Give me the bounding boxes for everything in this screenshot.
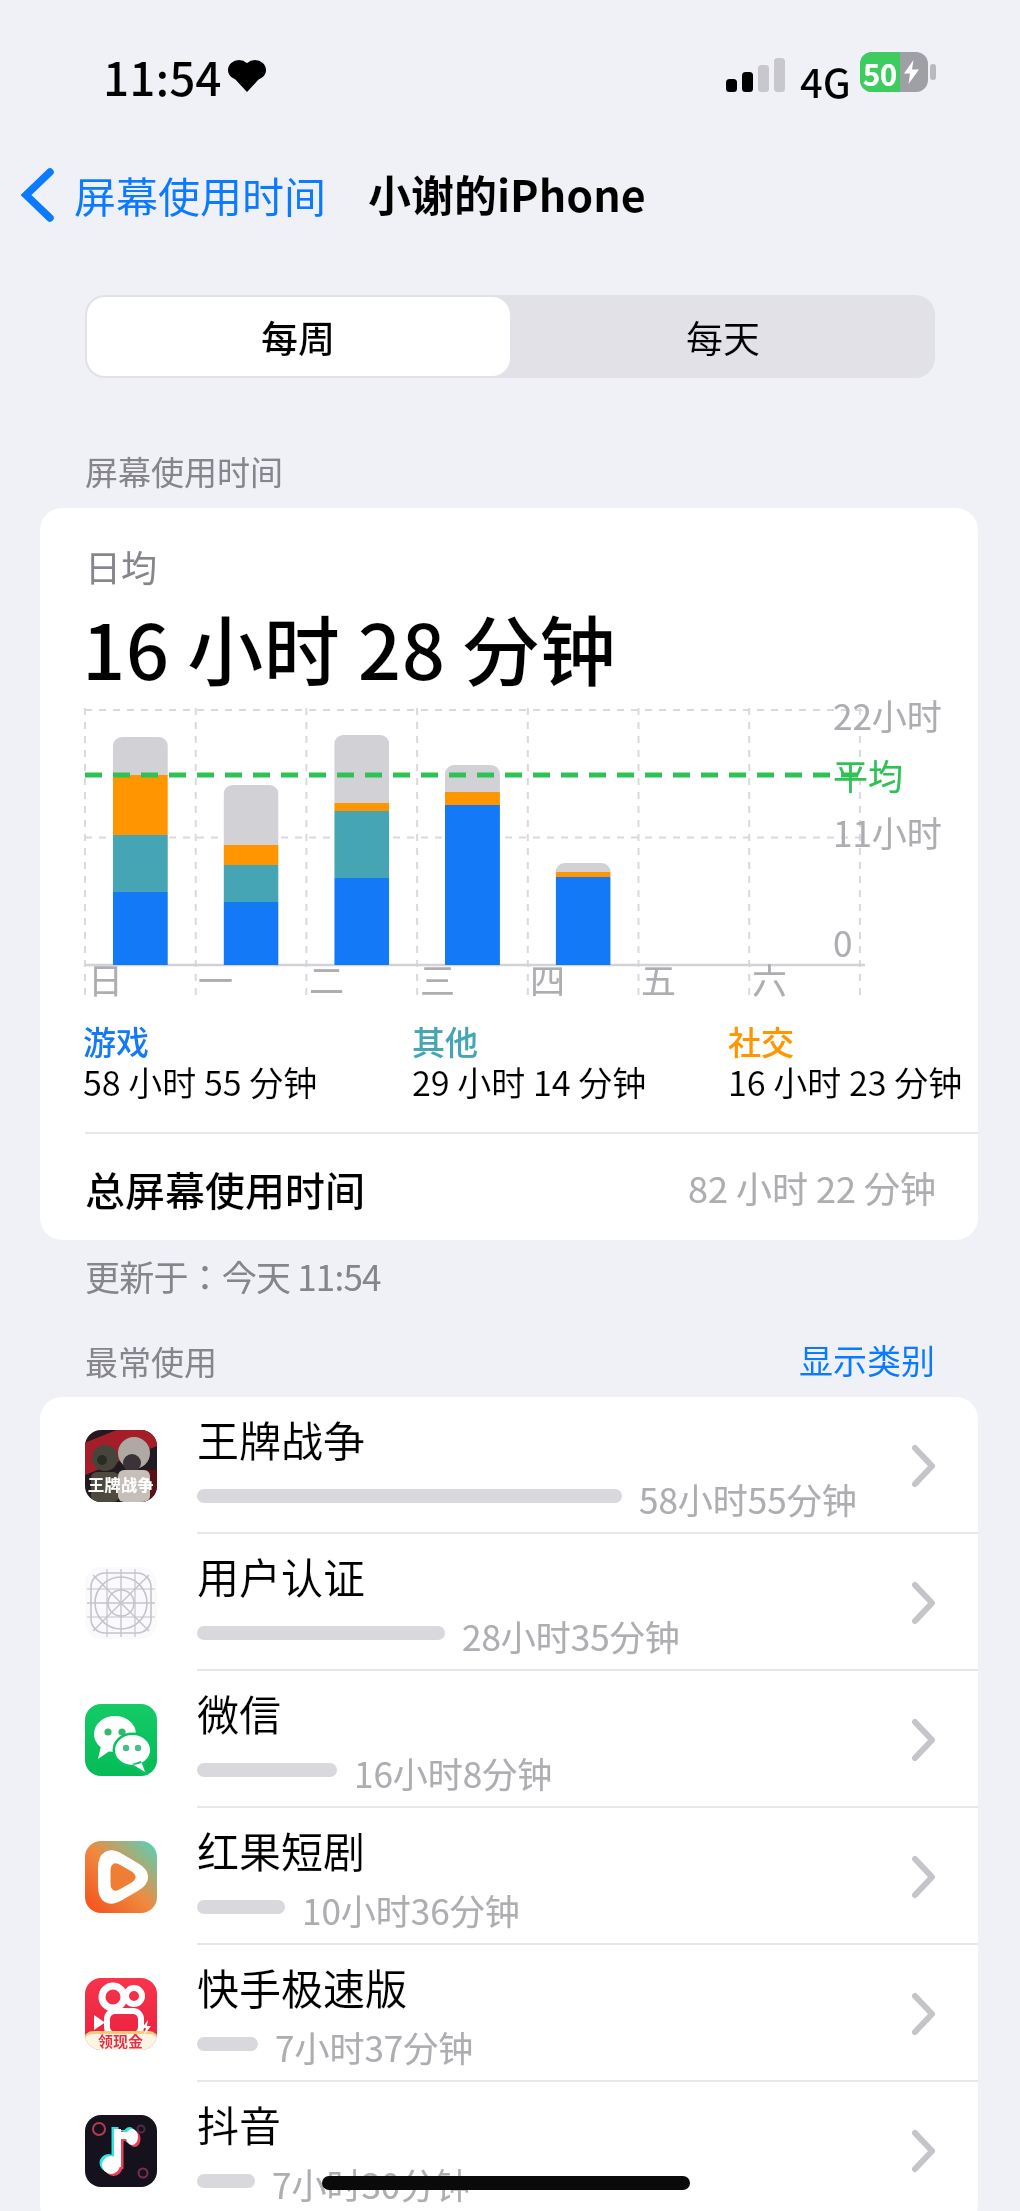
staticText: 7小时30分钟: [272, 2158, 471, 2209]
staticText: 屏幕使用时间: [85, 447, 283, 495]
staticText: 五: [641, 953, 677, 1004]
staticText: 王牌战争: [88, 1472, 155, 1495]
staticText: 50: [863, 52, 898, 92]
button[interactable]: 显示类别: [635, 1334, 935, 1384]
staticText: 领现金: [98, 2030, 144, 2052]
staticText: 三: [420, 953, 456, 1004]
staticText: 每周: [261, 310, 335, 364]
button[interactable]: [40, 1534, 978, 1671]
staticText: 更新于：今天 11:54: [85, 1250, 381, 1301]
button[interactable]: 每周: [85, 295, 510, 378]
staticText: 日: [88, 953, 124, 1004]
staticText: 10小时36分钟: [302, 1884, 520, 1935]
staticText: 二: [309, 953, 345, 1004]
staticText: 六: [752, 953, 788, 1004]
staticText: 王牌战争: [197, 1408, 366, 1469]
staticText: 82 小时 22 分钟: [688, 1161, 937, 1213]
button[interactable]: [40, 2082, 978, 2211]
button[interactable]: [40, 1397, 978, 1534]
staticText: 7小时37分钟: [275, 2021, 474, 2072]
staticText: 58 小时 55 分钟: [83, 1057, 318, 1106]
staticText: 11小时: [833, 806, 942, 857]
staticText: 小谢的iPhone: [368, 162, 646, 224]
staticText: 抖音: [197, 2093, 282, 2154]
staticText: 16 小时 28 分钟: [82, 592, 617, 702]
staticText: 快手极速版: [197, 1956, 408, 2017]
staticText: 用户认证: [197, 1545, 366, 1606]
staticText: 28小时35分钟: [462, 1610, 680, 1661]
staticText: 一: [198, 953, 234, 1004]
staticText: 显示类别: [799, 1335, 935, 1384]
staticText: 16 小时 23 分钟: [728, 1057, 963, 1106]
staticText: 总屏幕使用时间: [85, 1160, 365, 1218]
button[interactable]: [40, 1945, 978, 2082]
button[interactable]: 每天: [510, 295, 935, 378]
staticText: 红果短剧: [197, 1819, 366, 1880]
staticText: 游戏: [83, 1017, 149, 1065]
staticText: 四: [530, 953, 566, 1004]
staticText: 平均: [833, 749, 904, 800]
staticText: 最常使用: [85, 1337, 217, 1385]
button[interactable]: [40, 1808, 978, 1945]
staticText: 16小时8分钟: [354, 1747, 553, 1798]
button[interactable]: [40, 1671, 978, 1808]
staticText: 其他: [412, 1017, 478, 1065]
staticText: 22小时: [833, 689, 942, 740]
staticText: 社交: [728, 1017, 794, 1065]
staticText: 58小时55分钟: [639, 1473, 857, 1524]
staticText: 0: [833, 916, 853, 967]
staticText: 29 小时 14 分钟: [412, 1057, 647, 1106]
button[interactable]: 屏幕使用时间: [12, 162, 344, 228]
staticText: 每天: [686, 310, 760, 364]
staticText: 日均: [85, 540, 158, 592]
staticText: 4G: [800, 52, 851, 110]
staticText: 11:54: [103, 43, 222, 110]
staticText: 微信: [197, 1682, 282, 1743]
staticText: 屏幕使用时间: [74, 164, 327, 225]
